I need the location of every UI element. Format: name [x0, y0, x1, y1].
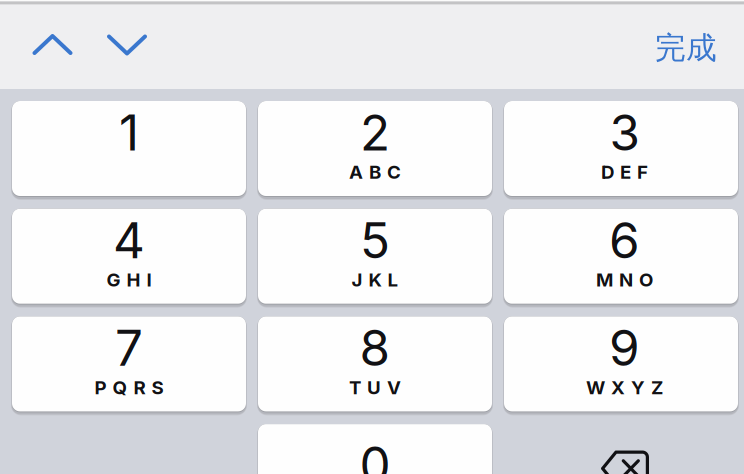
staticText: TUV	[349, 376, 401, 399]
staticText: JKL	[351, 268, 398, 291]
staticText: 5	[360, 210, 390, 270]
button[interactable]: 2	[258, 101, 492, 196]
button[interactable]: Next field	[90, 10, 164, 80]
staticText: 6	[609, 210, 640, 270]
staticText: 7	[115, 318, 143, 378]
button[interactable]: 3	[504, 101, 738, 196]
staticText: 8	[359, 318, 390, 378]
button[interactable]: 7	[12, 316, 246, 411]
staticText: ABC	[349, 161, 401, 183]
staticText: DEF	[601, 161, 648, 183]
staticText: PQRS	[94, 376, 163, 399]
staticText: 3	[609, 103, 639, 162]
staticText: WXYZ	[586, 376, 663, 399]
staticText: 1	[119, 103, 139, 162]
staticText: MNO	[596, 268, 653, 291]
button[interactable]: 1	[12, 101, 246, 196]
staticText: 2	[360, 103, 390, 162]
button[interactable]: Delete	[504, 424, 738, 474]
button[interactable]: 9	[504, 316, 738, 411]
button[interactable]: 6	[504, 209, 738, 304]
staticText: 完成	[655, 29, 717, 67]
button[interactable]: 4	[12, 209, 246, 304]
staticText: 0	[359, 435, 390, 474]
staticText: GHI	[106, 268, 151, 291]
staticText: 4	[113, 210, 145, 270]
button[interactable]: 0	[258, 424, 492, 474]
button[interactable]: 完成	[631, 13, 741, 83]
button[interactable]: Previous field	[15, 9, 89, 79]
staticText: 9	[609, 318, 640, 378]
button[interactable]: 5	[258, 209, 492, 304]
button[interactable]: 8	[258, 316, 492, 411]
